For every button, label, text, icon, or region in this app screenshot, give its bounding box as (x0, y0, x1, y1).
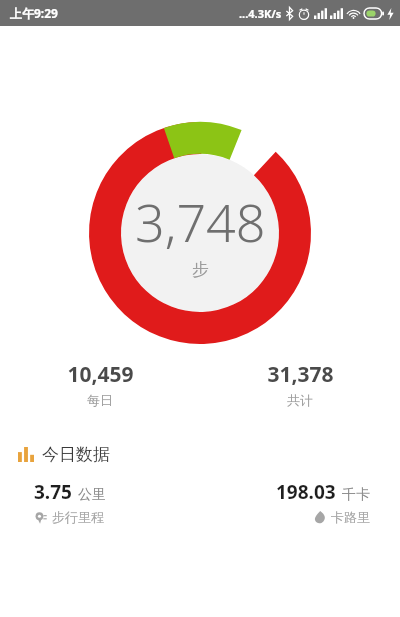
staticText: 198.03 (276, 479, 336, 505)
staticText: 千卡 (342, 486, 370, 504)
staticText: 3,748 (135, 186, 266, 257)
button[interactable]: 198.03 (200, 479, 400, 525)
staticText: 步 (192, 259, 209, 280)
other: Calories (314, 511, 326, 524)
staticText: ...4.3K/s (239, 6, 282, 21)
staticText: 卡路里 (331, 509, 370, 525)
button[interactable]: 3.75 (0, 479, 200, 525)
staticText: 3.75 (34, 479, 72, 505)
staticText: 公里 (78, 486, 106, 504)
other: Walking distance (34, 511, 47, 524)
button[interactable]: 31,378 (200, 356, 400, 412)
staticText: 步行里程 (52, 509, 104, 525)
staticText: 每日 (87, 392, 113, 408)
staticText: 31,378 (267, 360, 334, 389)
staticText: 10,459 (67, 360, 134, 389)
staticText: 今日数据 (42, 444, 110, 465)
button[interactable]: 10,459 (0, 356, 200, 412)
staticText: 共计 (287, 392, 313, 408)
staticText: 上午9:29 (10, 5, 58, 21)
